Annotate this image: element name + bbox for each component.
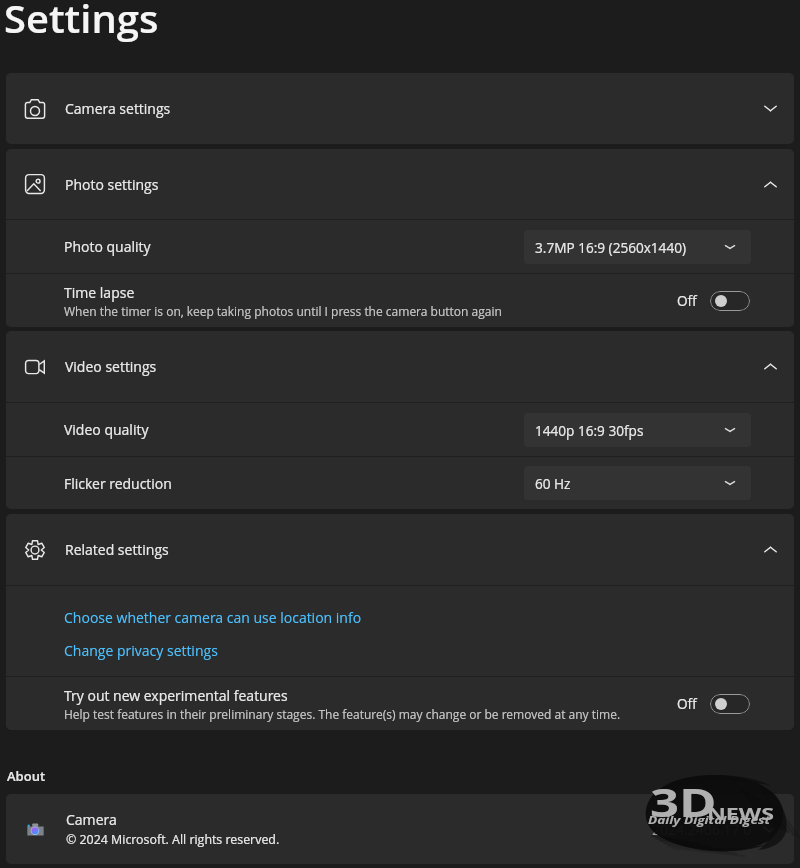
button[interactable]: Toggle off bbox=[710, 694, 750, 714]
staticText: Related settings bbox=[65, 540, 169, 559]
button[interactable]: Related settings bbox=[6, 514, 794, 585]
staticText: © 2024 Microsoft. All rights reserved. bbox=[66, 831, 280, 848]
staticText: 1440p 16:9 30fps bbox=[535, 421, 644, 440]
staticText: Video quality bbox=[64, 420, 149, 439]
staticText: Help test features in their preliminary … bbox=[64, 706, 621, 722]
button[interactable]: Video settings bbox=[6, 331, 794, 402]
staticText: Try out new experimental features bbox=[64, 686, 288, 705]
button[interactable]: Change privacy settings bbox=[64, 641, 218, 660]
button[interactable]: Choose whether camera can use location i… bbox=[64, 608, 362, 627]
staticText: Settings bbox=[4, 0, 159, 44]
staticText: Daily Digital Digest bbox=[648, 813, 770, 827]
button[interactable]: Camera bbox=[6, 794, 794, 864]
button[interactable]: Photo settings bbox=[6, 149, 794, 219]
button[interactable]: Flicker reduction bbox=[6, 457, 794, 509]
staticText: Choose whether camera can use location i… bbox=[64, 608, 362, 627]
button[interactable]: Try out new experimental features bbox=[6, 677, 794, 730]
staticText: Camera settings bbox=[65, 99, 171, 118]
button[interactable]: Video quality bbox=[6, 403, 794, 456]
button[interactable]: Time lapse bbox=[6, 274, 794, 327]
staticText: Photo quality bbox=[64, 237, 151, 256]
staticText: Off bbox=[677, 291, 697, 310]
staticText: About bbox=[7, 767, 45, 785]
staticText: Camera bbox=[66, 810, 117, 829]
staticText: NEWS bbox=[707, 803, 775, 825]
staticText: When the timer is on, keep taking photos… bbox=[64, 303, 502, 319]
staticText: Change privacy settings bbox=[64, 641, 218, 660]
staticText: Flicker reduction bbox=[64, 474, 172, 493]
staticText: 2024.2406.17.0 bbox=[652, 820, 752, 839]
button[interactable]: Toggle off bbox=[710, 291, 750, 311]
staticText: Video settings bbox=[65, 357, 157, 376]
staticText: 3.7MP 16:9 (2560x1440) bbox=[535, 238, 686, 257]
staticText: Time lapse bbox=[64, 283, 135, 302]
staticText: Photo settings bbox=[65, 175, 159, 194]
button[interactable]: Photo quality bbox=[6, 220, 794, 273]
button[interactable]: Camera settings bbox=[6, 73, 794, 144]
staticText: 3D bbox=[650, 775, 718, 828]
staticText: Off bbox=[677, 694, 697, 713]
staticText: 60 Hz bbox=[535, 474, 571, 493]
